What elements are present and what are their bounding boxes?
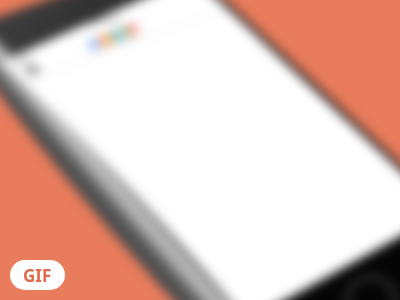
staticText: GIF	[23, 264, 52, 287]
button[interactable]: GIF	[10, 260, 65, 290]
